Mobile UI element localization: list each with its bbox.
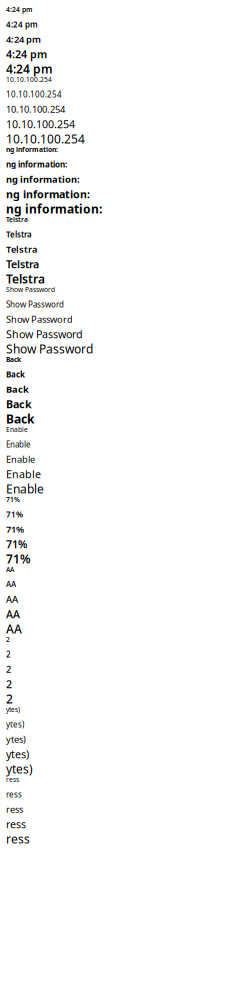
staticText: ng information: xyxy=(6,173,80,185)
staticText: 4:24 pm xyxy=(6,19,38,30)
staticText: 10.10.100.254 xyxy=(6,89,62,100)
staticText: Show Password xyxy=(6,285,55,294)
staticText: Back xyxy=(6,411,34,427)
staticText: 2 xyxy=(6,663,11,675)
staticText: 71% xyxy=(6,537,27,551)
staticText: 71% xyxy=(6,523,24,535)
staticText: Enable xyxy=(6,425,28,434)
staticText: 2 xyxy=(6,691,13,707)
staticText: ress xyxy=(6,831,30,847)
staticText: Show Password xyxy=(6,341,93,357)
staticText: 10.10.100.254 xyxy=(6,117,75,131)
staticText: ytes) xyxy=(6,733,26,745)
staticText: AA xyxy=(6,579,16,590)
staticText: Telstra xyxy=(6,271,45,287)
staticText: ress xyxy=(6,789,22,800)
staticText: Enable xyxy=(6,467,41,481)
staticText: 4:24 pm xyxy=(6,47,47,61)
staticText: 71% xyxy=(6,509,23,520)
staticText: Telstra xyxy=(6,215,28,224)
staticText: Telstra xyxy=(6,229,32,240)
staticText: Show Password xyxy=(6,327,83,341)
staticText: 10.10.100.254 xyxy=(6,75,52,84)
staticText: ng information: xyxy=(6,145,58,154)
staticText: Back xyxy=(6,397,32,411)
staticText: Back xyxy=(6,383,29,395)
staticText: ytes) xyxy=(6,719,24,730)
staticText: Telstra xyxy=(6,257,39,271)
staticText: ng information: xyxy=(6,159,67,170)
staticText: ng information: xyxy=(6,201,102,217)
staticText: ytes) xyxy=(6,747,29,761)
staticText: AA xyxy=(6,565,14,574)
staticText: 4:24 pm xyxy=(6,61,53,77)
staticText: Back xyxy=(6,355,21,364)
staticText: ng information: xyxy=(6,187,90,201)
staticText: ress xyxy=(6,817,26,831)
staticText: 71% xyxy=(6,495,20,504)
staticText: 71% xyxy=(6,551,31,567)
staticText: Back xyxy=(6,369,25,380)
staticText: ytes) xyxy=(6,705,20,714)
staticText: AA xyxy=(6,593,18,605)
staticText: 2 xyxy=(6,635,10,644)
staticText: 2 xyxy=(6,677,12,691)
staticText: Show Password xyxy=(6,313,73,325)
staticText: AA xyxy=(6,621,22,637)
staticText: Telstra xyxy=(6,243,37,255)
staticText: AA xyxy=(6,607,20,621)
staticText: Enable xyxy=(6,439,31,450)
staticText: Show Password xyxy=(6,299,64,310)
staticText: 4:24 pm xyxy=(6,5,32,14)
staticText: 2 xyxy=(6,649,11,660)
staticText: ress xyxy=(6,803,23,815)
staticText: 4:24 pm xyxy=(6,33,41,45)
staticText: 10.10.100.254 xyxy=(6,131,85,147)
staticText: Enable xyxy=(6,481,44,497)
staticText: ytes) xyxy=(6,761,33,777)
staticText: ress xyxy=(6,775,19,784)
staticText: Enable xyxy=(6,453,35,465)
staticText: 10.10.100.254 xyxy=(6,103,65,115)
